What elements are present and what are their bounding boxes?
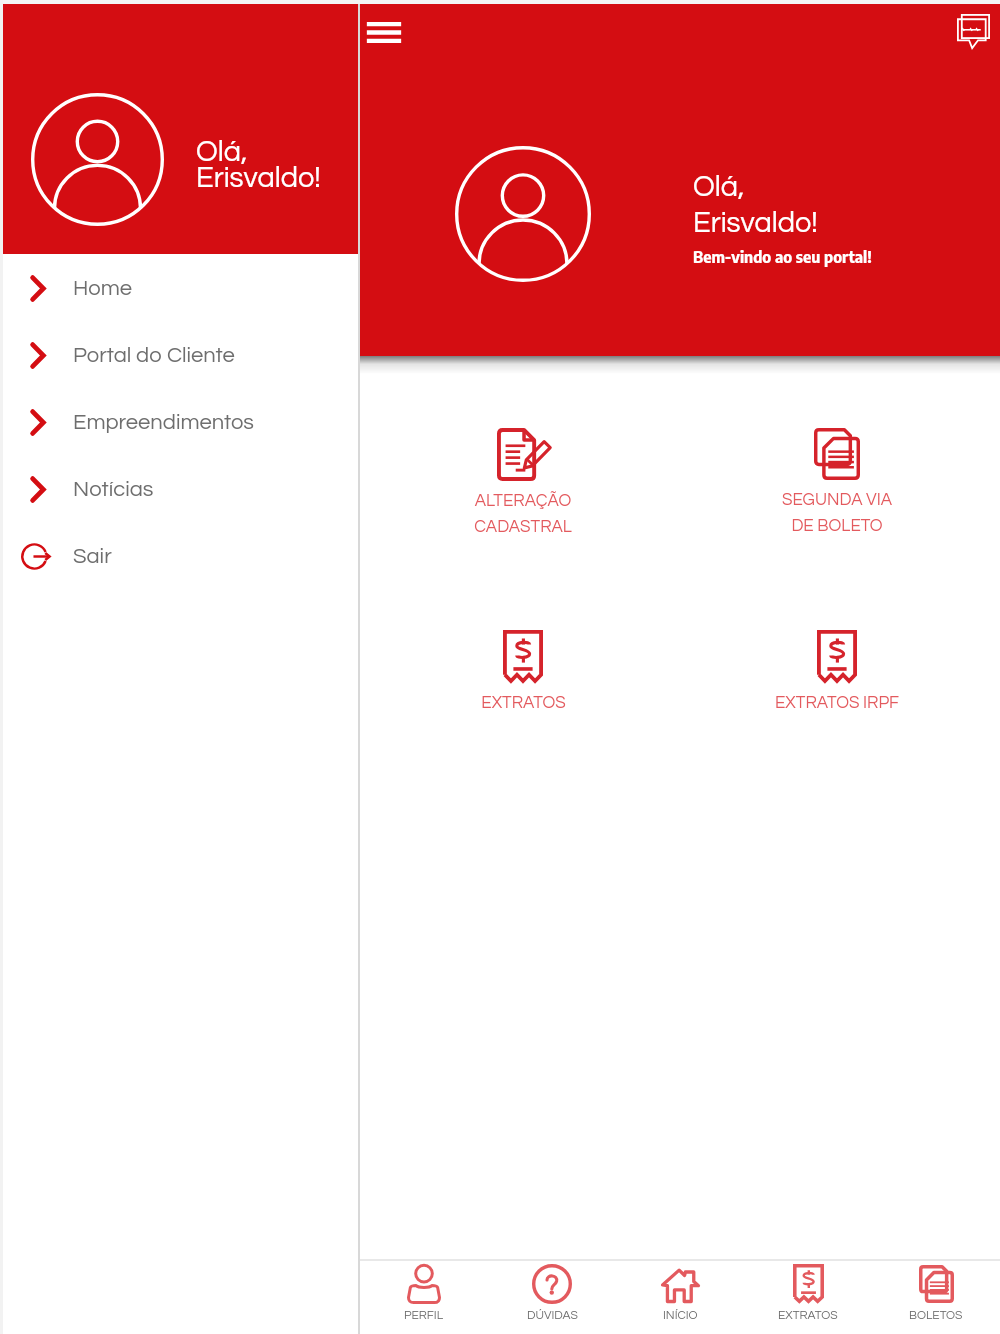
button[interactable]: EXTRATOS [366, 630, 680, 712]
staticText: EXTRATOS [481, 694, 566, 712]
staticText: Empreendimentos [73, 411, 254, 434]
staticText: ALTERAÇÃO CADASTRAL [474, 492, 572, 535]
button[interactable]: Home [0, 255, 360, 322]
staticText: INÍCIO [663, 1309, 698, 1321]
staticText: Bem-vindo ao seu portal! [693, 247, 872, 267]
staticText: SEGUNDA VIA DE BOLETO [782, 491, 892, 534]
button[interactable]: BOLETOS [872, 1263, 1000, 1334]
button[interactable]: Sair [0, 523, 360, 590]
staticText: PERFIL [404, 1309, 444, 1321]
button[interactable]: EXTRATOS [744, 1263, 872, 1334]
button[interactable]: Empreendimentos [0, 389, 360, 456]
staticText: Sair [73, 545, 112, 568]
button[interactable]: Portal do Cliente [0, 322, 360, 389]
staticText: Home [73, 277, 133, 300]
button[interactable]: DÚVIDAS [488, 1263, 616, 1334]
button[interactable]: ALTERAÇÃO CADASTRAL [366, 428, 680, 535]
button[interactable]: Notícias [0, 456, 360, 523]
staticText: Portal do Cliente [73, 344, 235, 367]
staticText: BOLETOS [909, 1309, 963, 1321]
button[interactable]: Open navigation menu [356, 4, 412, 60]
button[interactable]: SEGUNDA VIA DE BOLETO [680, 428, 994, 534]
button[interactable]: INÍCIO [616, 1263, 744, 1334]
staticText: EXTRATOS IRPF [775, 694, 899, 712]
button[interactable]: EXTRATOS IRPF [680, 630, 994, 712]
staticText: Notícias [73, 478, 154, 501]
button[interactable]: News [945, 3, 1000, 59]
staticText: Olá, Erisvaldo! [693, 172, 818, 239]
button[interactable]: PERFIL [360, 1263, 488, 1334]
staticText: Olá, Erisvaldo! [196, 137, 321, 194]
staticText: EXTRATOS [778, 1309, 838, 1321]
staticText: DÚVIDAS [527, 1309, 578, 1321]
